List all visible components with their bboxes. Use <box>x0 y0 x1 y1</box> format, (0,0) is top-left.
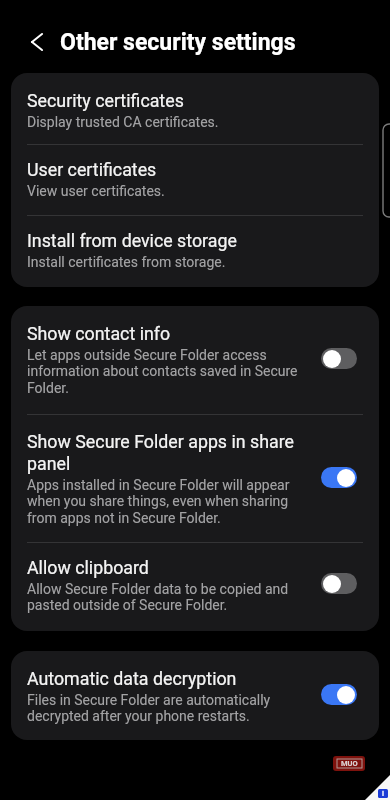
staticText: Show Secure Folder apps in share panel <box>27 431 315 474</box>
staticText: MUO <box>341 759 358 768</box>
staticText: Install certificates from storage. <box>27 254 226 270</box>
button[interactable]: User certificates <box>11 145 379 215</box>
button[interactable]: Switch, off <box>321 573 357 594</box>
staticText: Install from device storage <box>27 230 237 251</box>
staticText: User certificates <box>27 159 157 180</box>
staticText: Apps installed in Secure Folder will app… <box>27 477 315 527</box>
button[interactable]: Automatic data decryption <box>11 651 379 740</box>
staticText: Let apps outside Secure Folder access in… <box>27 347 315 397</box>
staticText: View user certificates. <box>27 183 165 199</box>
staticText: Allow clipboard <box>27 557 149 578</box>
staticText: Show contact info <box>27 323 171 344</box>
button[interactable]: Switch, on <box>321 684 357 705</box>
staticText: Display trusted CA certificates. <box>27 114 219 130</box>
button[interactable]: Navigate up <box>18 23 56 61</box>
button[interactable]: Show contact info <box>11 306 379 414</box>
button[interactable]: Security certificates <box>11 73 379 144</box>
staticText: Files in Secure Folder are automatically… <box>27 692 315 725</box>
button[interactable]: Switch, on <box>321 467 357 488</box>
button[interactable]: Switch, off <box>321 348 357 369</box>
button[interactable]: Show Secure Folder apps in share panel <box>11 415 379 542</box>
staticText: Security certificates <box>27 90 184 111</box>
staticText: Other security settings <box>60 29 296 56</box>
button[interactable]: Install from device storage <box>11 216 379 287</box>
staticText: Allow Secure Folder data to be copied an… <box>27 581 315 614</box>
button[interactable]: Allow clipboard <box>11 543 379 631</box>
staticText: Automatic data decryption <box>27 668 237 689</box>
